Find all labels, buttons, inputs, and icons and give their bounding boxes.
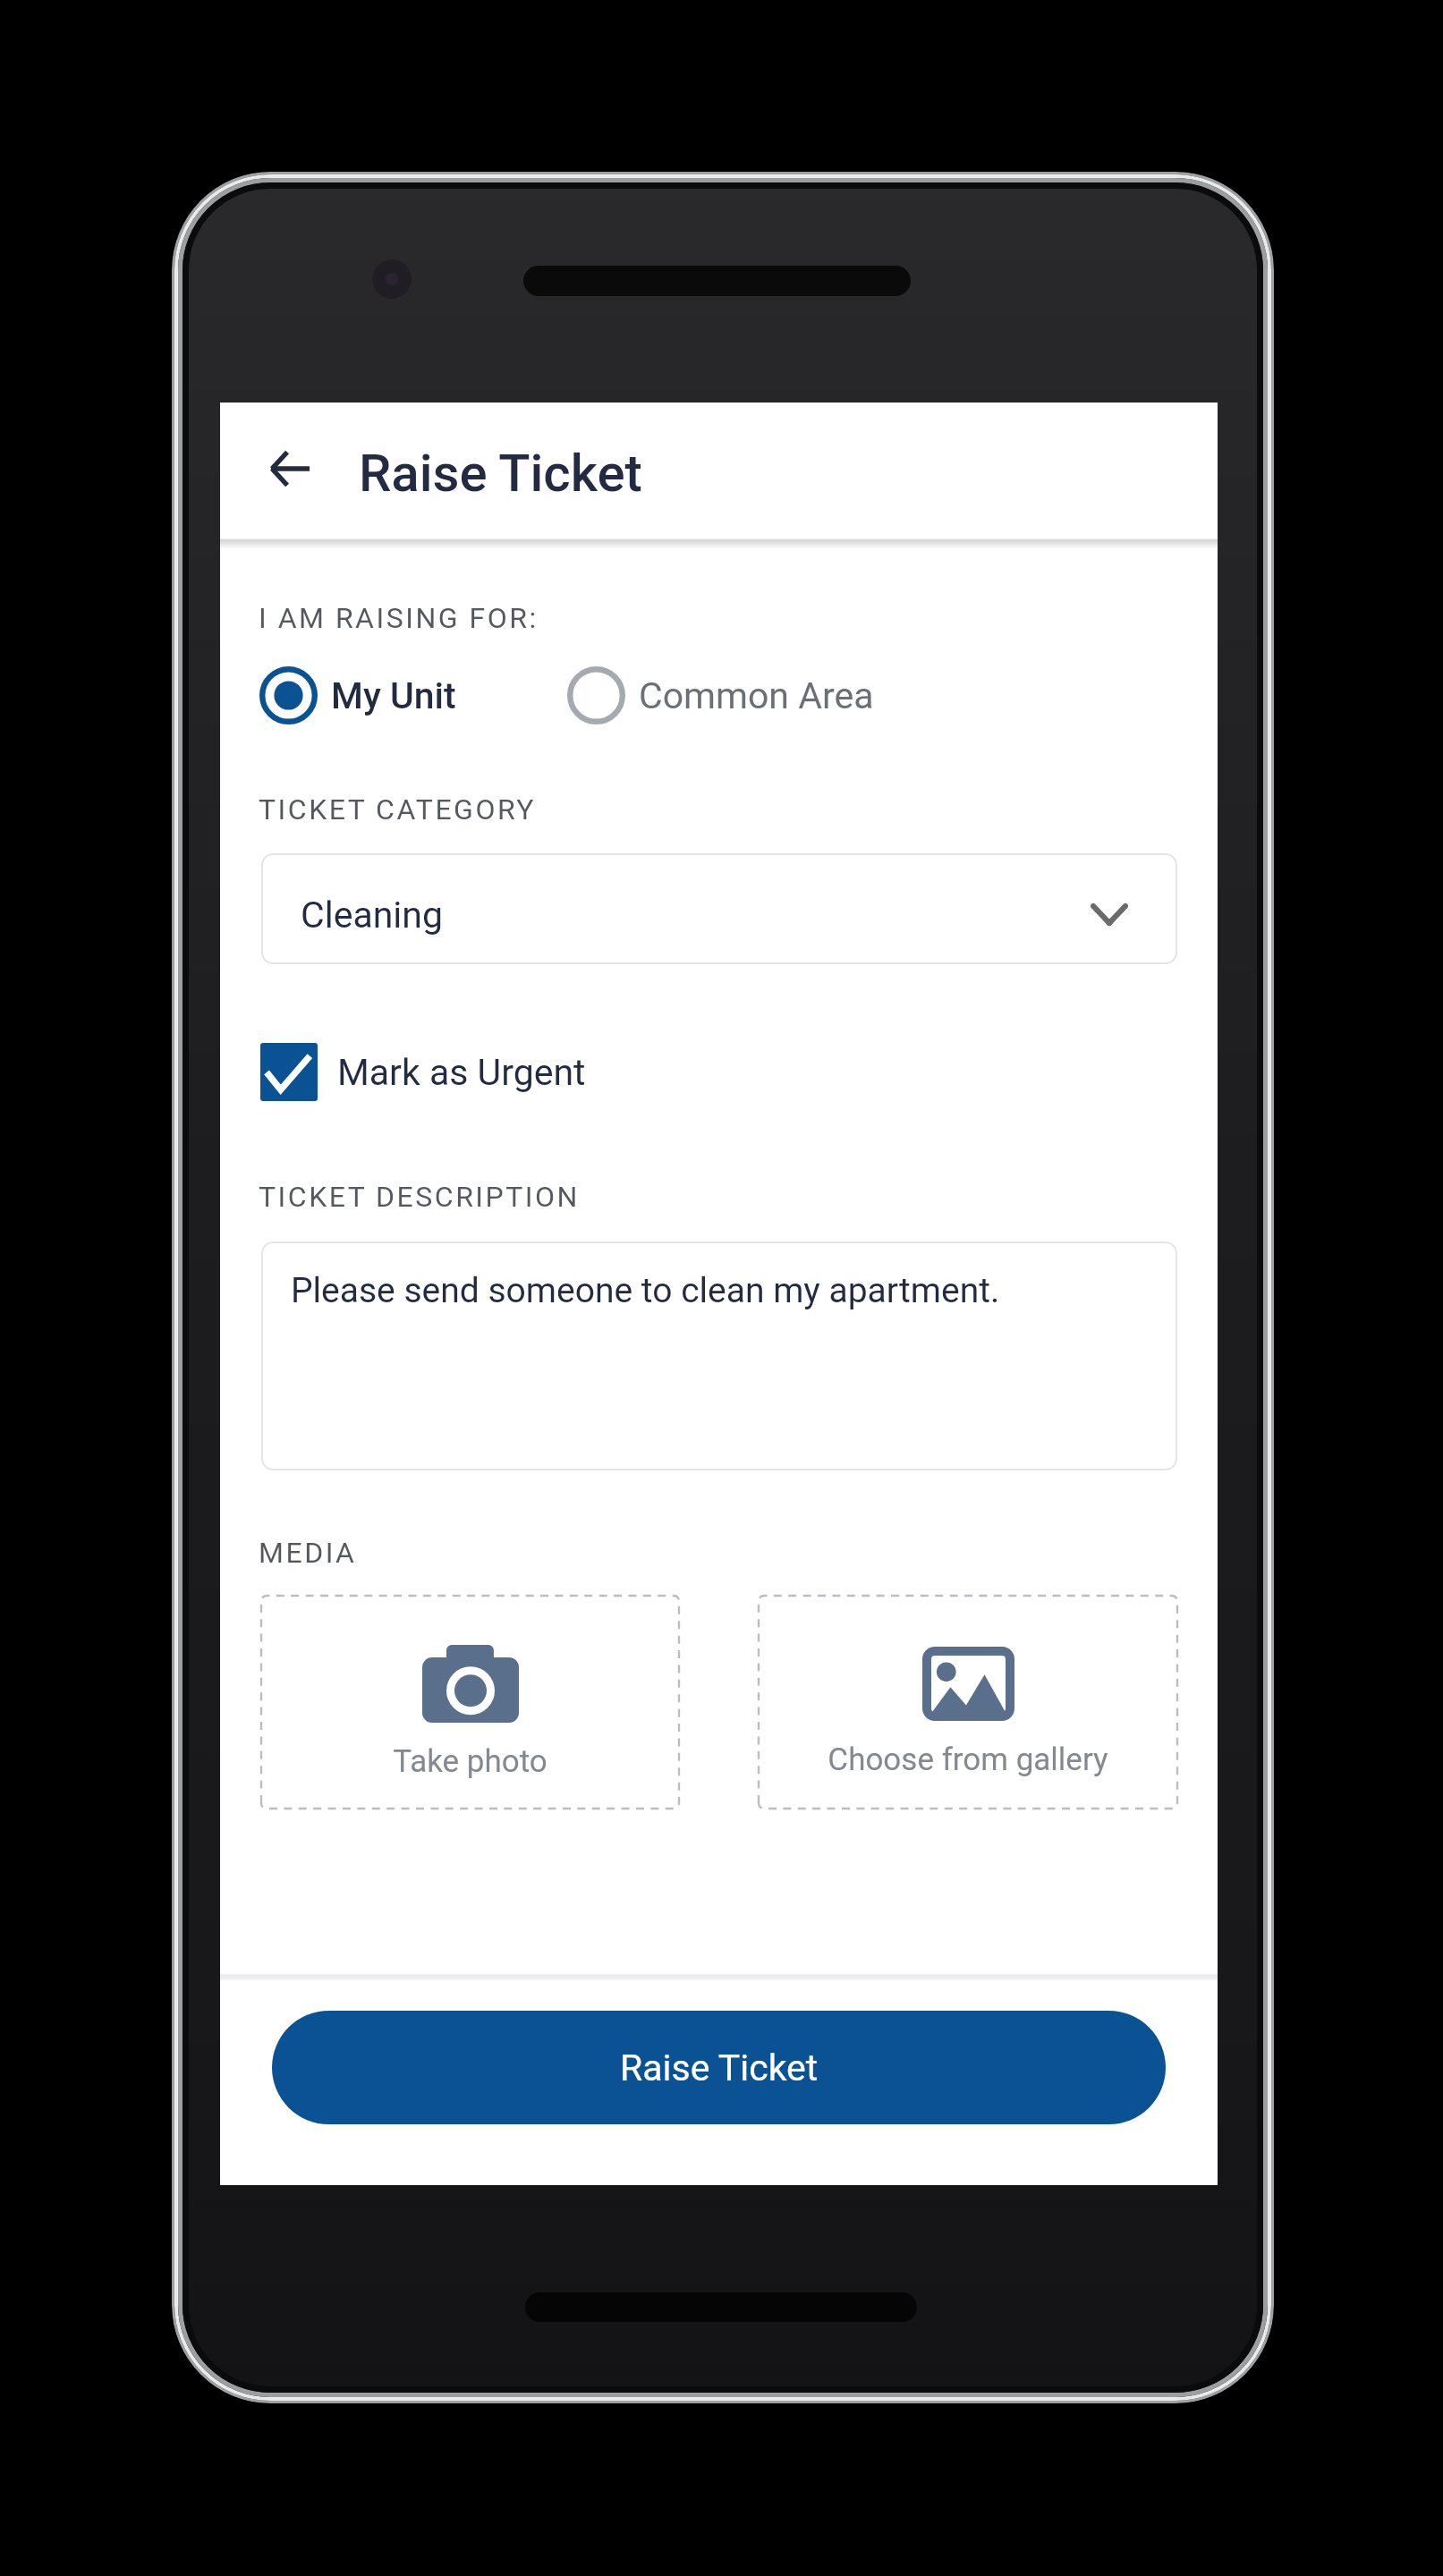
button[interactable]: Back: [255, 434, 325, 504]
staticText: Raise Ticket: [359, 443, 642, 504]
staticText: Take photo: [393, 1743, 547, 1780]
button[interactable]: Please send someone to clean my apartmen…: [261, 1241, 1177, 1470]
button[interactable]: Take photo: [261, 1596, 679, 1809]
button[interactable]: Mark as Urgent: [260, 1043, 586, 1101]
staticText: Common Area: [639, 674, 874, 717]
button[interactable]: Raise Ticket: [272, 2011, 1166, 2124]
staticText: I AM RAISING FOR:: [259, 601, 539, 635]
staticText: TICKET DESCRIPTION: [259, 1180, 580, 1214]
button[interactable]: Choose from gallery: [759, 1596, 1177, 1809]
staticText: Please send someone to clean my apartmen…: [291, 1270, 1000, 1311]
button[interactable]: My Unit: [259, 665, 456, 725]
staticText: Cleaning: [301, 894, 443, 936]
staticText: Raise Ticket: [620, 2046, 819, 2089]
staticText: Mark as Urgent: [337, 1051, 586, 1094]
staticText: TICKET CATEGORY: [259, 792, 537, 826]
staticText: MEDIA: [259, 1536, 357, 1570]
staticText: My Unit: [331, 674, 456, 717]
other: Expand category: [1084, 889, 1134, 939]
button[interactable]: Common Area: [566, 665, 874, 725]
button[interactable]: Cleaning: [261, 853, 1177, 964]
staticText: Choose from gallery: [828, 1741, 1108, 1778]
